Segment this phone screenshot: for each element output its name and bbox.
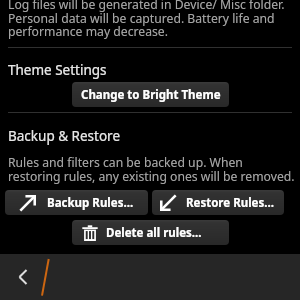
staticText: Change to Bright Theme xyxy=(81,87,221,103)
button[interactable]: Restore Rules... xyxy=(152,190,284,215)
button[interactable]: Change to Bright Theme xyxy=(72,82,229,107)
staticText: Backup & Restore xyxy=(8,127,121,145)
staticText: Log files will be generated in Device/ M… xyxy=(8,0,297,39)
staticText: Rules and filters can be backed up. When… xyxy=(8,154,297,184)
staticText: Backup Rules... xyxy=(47,195,134,211)
button[interactable]: Backup Rules... xyxy=(5,190,148,215)
staticText: Theme Settings xyxy=(8,61,107,79)
staticText: Delete all rules... xyxy=(106,225,202,241)
button[interactable]: Back xyxy=(10,264,36,290)
button[interactable]: Delete all rules... xyxy=(72,220,229,245)
staticText: Restore Rules... xyxy=(186,195,274,211)
